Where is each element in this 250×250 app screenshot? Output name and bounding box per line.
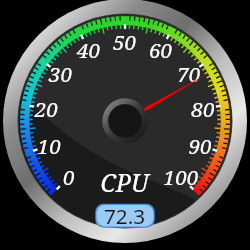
button[interactable]: CPU usage gauge, 72.3 percent — [0, 0, 250, 250]
